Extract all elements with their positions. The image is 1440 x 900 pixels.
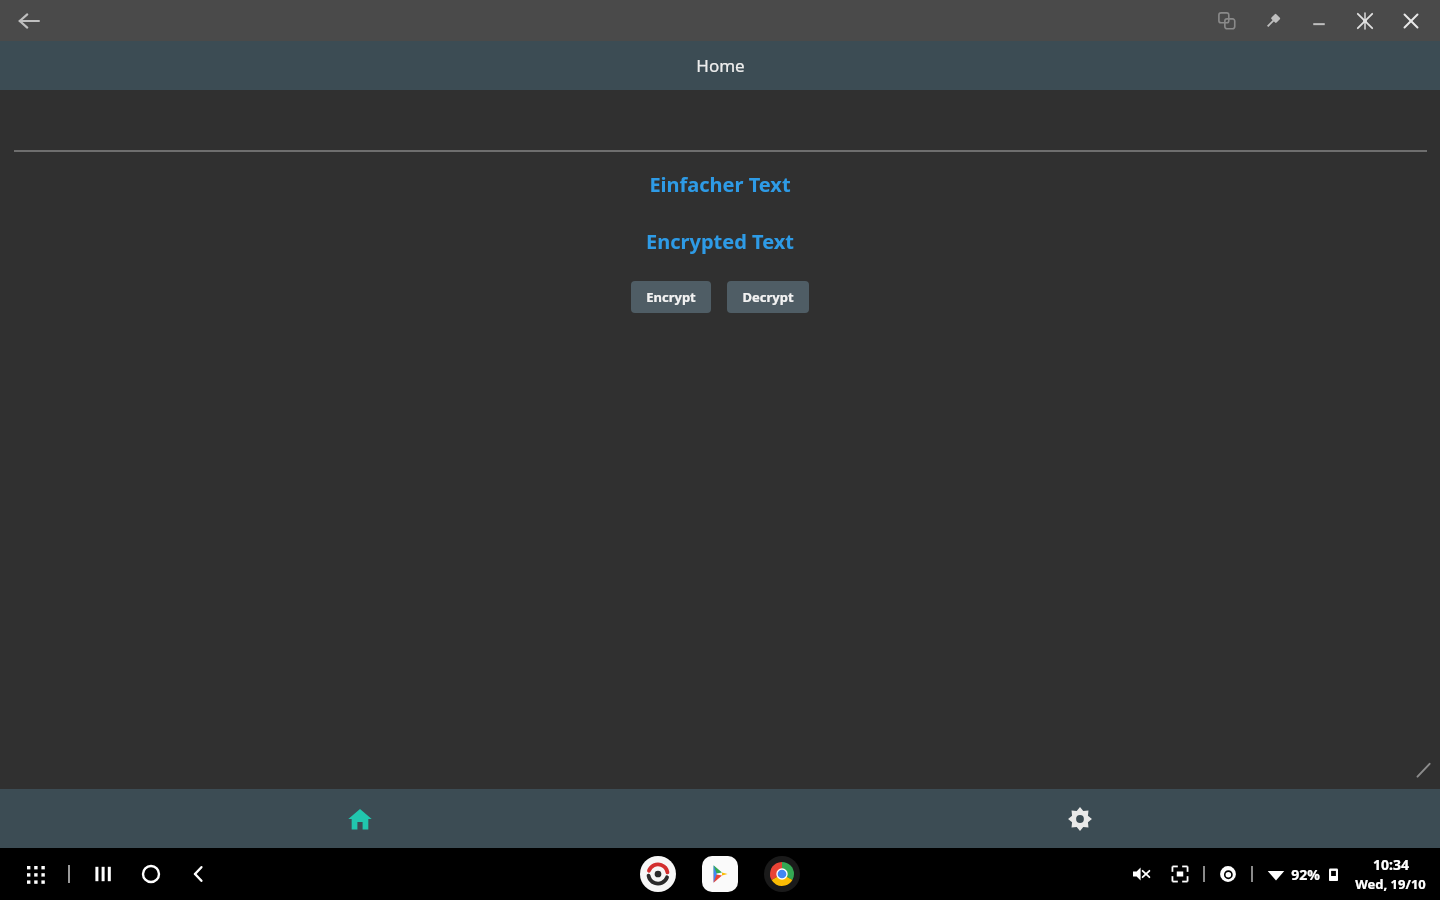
button[interactable]: Chrome xyxy=(764,856,800,892)
staticText: Decrypt xyxy=(742,288,794,306)
button[interactable]: Close xyxy=(1396,6,1426,36)
staticText: 92% xyxy=(1291,865,1320,884)
button[interactable]: Settings xyxy=(720,789,1440,848)
button[interactable]: Home xyxy=(0,789,720,848)
button[interactable]: Pin window xyxy=(1258,6,1288,36)
staticText: Wed, 19/10 xyxy=(1355,875,1426,893)
button[interactable]: App xyxy=(640,856,676,892)
button[interactable]: Play Store xyxy=(702,856,738,892)
staticText: Encrypt xyxy=(646,288,696,306)
button[interactable]: Back xyxy=(182,857,216,891)
staticText: Einfacher Text xyxy=(649,171,791,198)
button[interactable]: Home xyxy=(134,857,168,891)
button[interactable]: Encrypt xyxy=(631,281,711,313)
staticText: 10:34 xyxy=(1373,855,1409,874)
button[interactable]: Minimize xyxy=(1304,6,1334,36)
button[interactable]: Restore xyxy=(1350,6,1380,36)
staticText: Home xyxy=(696,54,745,77)
staticText: Encrypted Text xyxy=(646,228,794,255)
button[interactable]: Decrypt xyxy=(727,281,809,313)
button[interactable]: Back xyxy=(10,2,48,40)
button[interactable]: Duplicate window xyxy=(1212,6,1242,36)
button[interactable]: Recent apps xyxy=(86,857,120,891)
button[interactable]: All apps xyxy=(18,857,52,891)
